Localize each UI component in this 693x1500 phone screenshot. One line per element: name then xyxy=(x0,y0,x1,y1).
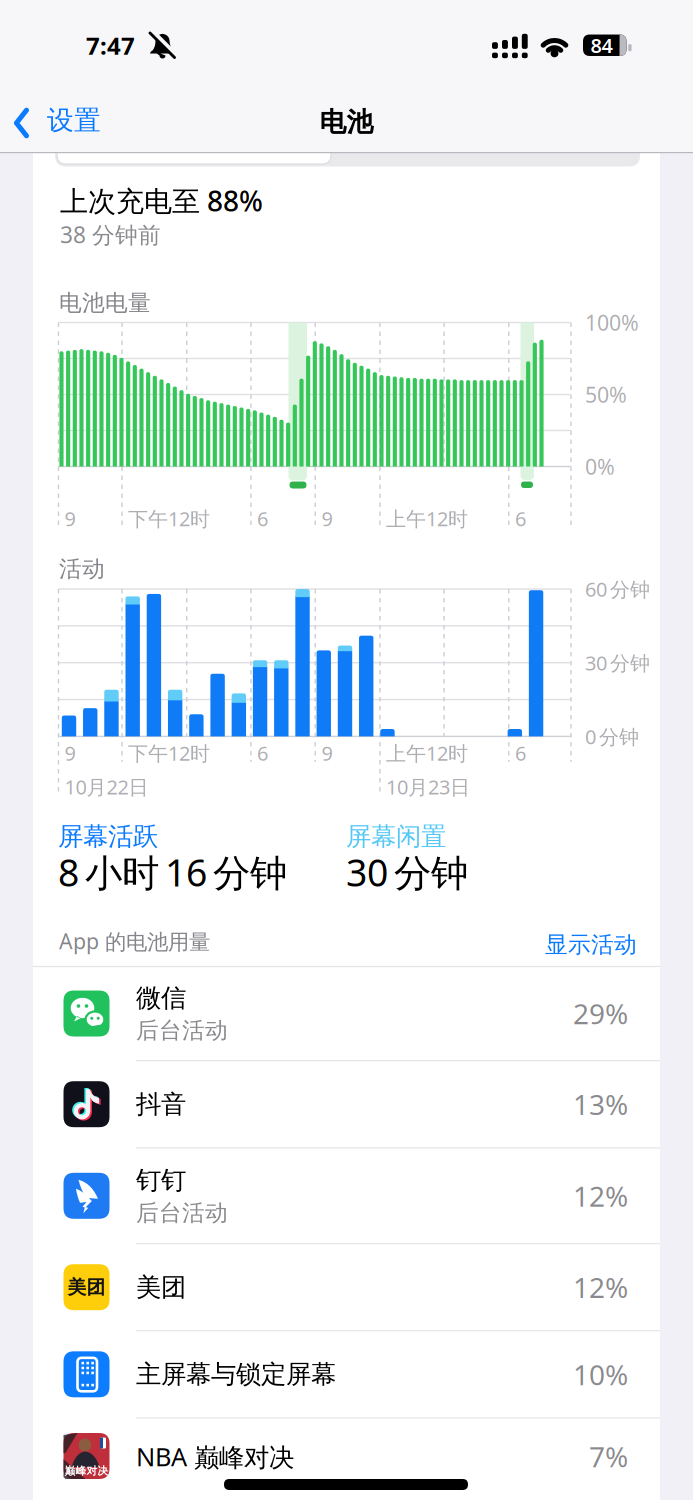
staticText: 6 xyxy=(515,740,526,766)
button[interactable]: 美团 xyxy=(33,1244,660,1331)
staticText: 美团 xyxy=(136,1272,186,1303)
staticText: 显示活动 xyxy=(545,931,637,959)
staticText: 38 分钟前 xyxy=(60,219,161,249)
staticText: 6 xyxy=(257,740,268,766)
staticText: 后台活动 xyxy=(136,1199,228,1227)
staticText: 7% xyxy=(589,1438,628,1475)
staticText: App 的电池用量 xyxy=(59,927,210,955)
staticText: 30 分钟 xyxy=(585,649,650,676)
button[interactable]: 最近 24 小时 xyxy=(56,152,332,164)
button[interactable]: 巅峰对决 xyxy=(33,1418,660,1495)
staticText: 9 xyxy=(321,740,332,766)
button[interactable]: 抖音 xyxy=(33,1061,660,1148)
staticText: NBA 巅峰对决 xyxy=(136,1440,294,1473)
button[interactable]: 最近 10 天 xyxy=(55,152,640,166)
button[interactable]: 微信 xyxy=(33,966,660,1060)
staticText: 0% xyxy=(585,452,615,481)
staticText: 上午12时 xyxy=(386,505,468,532)
button[interactable]: 显示活动 xyxy=(517,920,637,970)
staticText: 7:47 xyxy=(86,30,135,61)
staticText: 100% xyxy=(585,308,639,337)
staticText: 9 xyxy=(64,505,75,532)
button[interactable]: 主屏幕与锁定屏幕 xyxy=(33,1331,660,1418)
staticText: 主屏幕与锁定屏幕 xyxy=(136,1359,336,1390)
staticText: 50% xyxy=(585,380,627,409)
staticText: 0 分钟 xyxy=(585,723,639,750)
staticText: 巅峰对决 xyxy=(64,1464,108,1477)
staticText: 美团 xyxy=(67,1276,105,1299)
staticText: 设置 xyxy=(47,104,101,137)
staticText: 活动 xyxy=(59,555,105,583)
staticText: 9 xyxy=(321,505,332,532)
staticText: 9 xyxy=(64,740,75,766)
staticText: 12% xyxy=(573,1177,628,1214)
staticText: 10% xyxy=(573,1356,628,1393)
button[interactable]: 钉钉 xyxy=(33,1148,660,1244)
staticText: 屏幕闲置 xyxy=(346,821,446,852)
staticText: 屏幕活跃 xyxy=(58,821,158,852)
staticText: 微信 xyxy=(136,982,186,1014)
staticText: 10月22日 xyxy=(64,773,148,800)
staticText: 6 xyxy=(515,505,526,532)
staticText: 下午12时 xyxy=(128,740,210,766)
staticText: 后台活动 xyxy=(136,1017,228,1044)
staticText: 上次充电至 88% xyxy=(60,182,263,219)
staticText: 抖音 xyxy=(136,1089,186,1120)
staticText: 8 小时 16 分钟 xyxy=(58,847,287,897)
staticText: 钉钉 xyxy=(136,1165,186,1196)
staticText: 6 xyxy=(257,505,268,532)
staticText: 60 分钟 xyxy=(585,576,650,602)
staticText: 10月23日 xyxy=(386,773,470,800)
staticText: 30 分钟 xyxy=(346,847,468,897)
staticText: 29% xyxy=(573,995,628,1032)
staticText: 电池 xyxy=(319,106,373,138)
staticText: 84 xyxy=(590,32,612,58)
staticText: 上午12时 xyxy=(386,740,468,766)
staticText: 电池电量 xyxy=(59,289,151,317)
staticText: 12% xyxy=(573,1269,628,1306)
button[interactable]: 设置 xyxy=(14,104,124,144)
staticText: 下午12时 xyxy=(128,505,210,532)
staticText: 13% xyxy=(573,1086,628,1123)
